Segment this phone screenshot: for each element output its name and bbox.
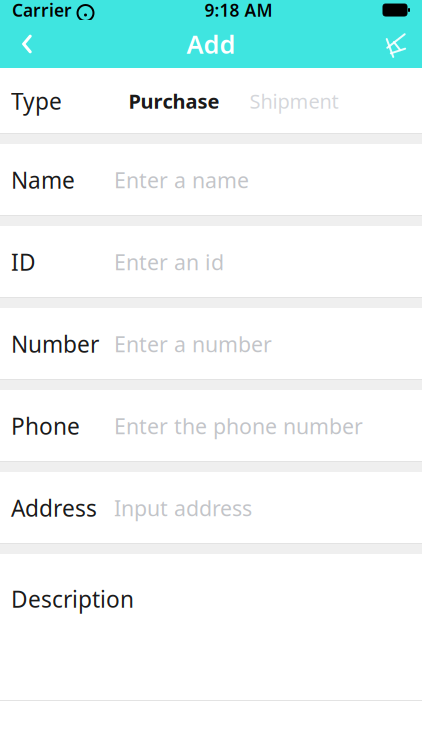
staticText: Name xyxy=(11,165,75,195)
staticText: Description xyxy=(11,584,134,614)
button[interactable]: ID xyxy=(0,226,422,298)
staticText: 9:18 AM xyxy=(204,0,272,21)
button[interactable]: Shipment xyxy=(234,68,354,134)
button[interactable]: Phone xyxy=(0,390,422,462)
staticText: Input address xyxy=(114,494,252,522)
button[interactable]: Purchase xyxy=(114,68,234,134)
staticText: Address xyxy=(11,493,97,523)
button[interactable]: Send xyxy=(368,20,422,68)
button[interactable]: Address xyxy=(0,472,422,544)
staticText: Carrier xyxy=(12,0,72,21)
staticText: Enter the phone number xyxy=(114,412,363,440)
button[interactable]: Description xyxy=(0,554,422,701)
staticText: Enter an id xyxy=(114,248,224,276)
staticText: Purchase xyxy=(128,88,219,114)
button[interactable]: Number xyxy=(0,308,422,380)
staticText xyxy=(72,0,77,21)
button[interactable]: Name xyxy=(0,144,422,216)
staticText: Add xyxy=(186,27,235,61)
staticText: Phone xyxy=(11,411,80,441)
staticText: Enter a name xyxy=(114,166,249,194)
button[interactable]: Back xyxy=(0,20,54,68)
staticText: ID xyxy=(11,247,36,277)
staticText: Number xyxy=(11,329,99,359)
staticText: Type xyxy=(11,86,62,116)
staticText: Shipment xyxy=(249,88,338,114)
staticText: Enter a number xyxy=(114,330,272,358)
